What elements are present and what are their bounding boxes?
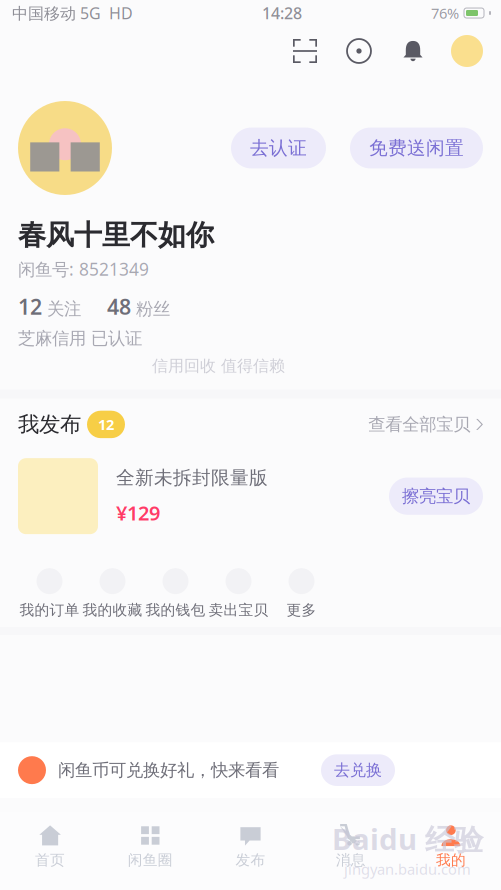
button[interactable]: 更多 — [270, 568, 333, 619]
button[interactable]: 我的订单 — [18, 568, 81, 619]
staticText: 去兑换 — [334, 760, 382, 780]
button[interactable]: 我的 — [401, 819, 501, 874]
button[interactable]: 去认证 — [231, 127, 326, 168]
button[interactable]: 闲鱼币可兑换好礼，快来看看 — [0, 742, 501, 798]
staticText: 我的订单 — [19, 601, 79, 619]
staticText: 我发布 — [18, 411, 81, 437]
staticText: 全新未拆封限量版 — [116, 466, 268, 489]
staticText: 48 — [107, 292, 131, 321]
staticText: 粉丝 — [136, 298, 170, 320]
staticText: 去认证 — [250, 136, 307, 159]
staticText: 关注 — [47, 298, 81, 320]
staticText: 12 — [98, 415, 114, 434]
staticText: 12 — [18, 292, 42, 321]
button[interactable]: 首页 — [0, 819, 100, 874]
staticText: 闲鱼圈 — [128, 851, 173, 869]
button[interactable]: 闲鱼圈 — [100, 819, 200, 874]
button[interactable]: Notifications — [401, 39, 425, 63]
staticText: 春风十里不如你 — [18, 218, 214, 252]
button[interactable]: 擦亮宝贝 — [389, 477, 483, 515]
staticText: 更多 — [286, 601, 316, 619]
staticText: ¥129 — [116, 499, 160, 526]
staticText: 我的 — [436, 851, 466, 869]
staticText: Baidu 经验 — [332, 819, 483, 858]
button[interactable]: 消息 — [301, 819, 401, 874]
staticText: 76% — [431, 3, 459, 23]
button[interactable]: 我的钱包 — [144, 568, 207, 619]
staticText: 14:28 — [262, 2, 302, 24]
staticText: 免费送闲置 — [369, 136, 464, 159]
button[interactable]: 查看全部宝贝 — [368, 414, 483, 435]
staticText: jingyan.baidu.com — [344, 859, 471, 879]
button[interactable]: Settings — [347, 39, 371, 63]
staticText: 首页 — [35, 851, 65, 869]
staticText: 消息 — [336, 851, 366, 869]
staticText: 我的收藏 — [82, 601, 142, 619]
staticText: 查看全部宝贝 — [368, 414, 470, 435]
button[interactable]: 48 — [107, 292, 170, 321]
button[interactable]: 卖出宝贝 — [207, 568, 270, 619]
button[interactable]: Profile — [451, 35, 483, 67]
button[interactable]: 12 — [18, 292, 81, 321]
button[interactable]: 发布 — [200, 819, 301, 874]
staticText: 我的钱包 — [145, 601, 205, 619]
button[interactable]: 信用回收 值得信赖 — [152, 356, 285, 376]
staticText: 闲鱼币可兑换好礼，快来看看 — [58, 759, 279, 781]
staticText: 中国移动 5G HD — [12, 2, 133, 24]
staticText: 卖出宝贝 — [208, 601, 268, 619]
button[interactable]: 免费送闲置 — [350, 127, 483, 168]
staticText: 发布 — [235, 851, 265, 869]
button[interactable]: Scan — [293, 39, 317, 63]
button[interactable]: 我的收藏 — [81, 568, 144, 619]
staticText: 芝麻信用 已认证 — [18, 328, 142, 349]
staticText: 擦亮宝贝 — [402, 485, 470, 507]
staticText: 闲鱼号: 8521349 — [18, 257, 149, 280]
staticText: 信用回收 值得信赖 — [152, 356, 285, 376]
